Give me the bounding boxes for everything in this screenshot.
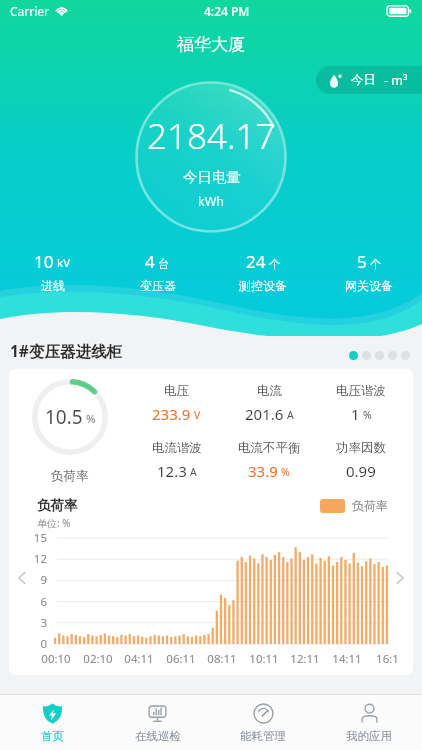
staticText: 测控设备	[239, 278, 287, 293]
staticText: 今日	[351, 72, 376, 88]
staticText: 负荷率	[352, 498, 388, 513]
staticText: 单位: %	[37, 516, 71, 530]
staticText: Carrier	[10, 3, 50, 19]
staticText: 4:24 PM	[204, 3, 250, 19]
staticText: 10.5	[45, 404, 83, 430]
button[interactable]: Page 5	[401, 351, 410, 360]
staticText: 电压谐波	[336, 383, 386, 399]
staticText: A	[190, 465, 197, 479]
staticText: 10	[34, 250, 54, 273]
staticText: 能耗管理	[240, 729, 286, 743]
staticText: 电流谐波	[152, 440, 202, 456]
button[interactable]: 能耗管理	[210, 695, 316, 750]
staticText: 5	[357, 250, 367, 273]
staticText: 进线	[41, 278, 65, 293]
staticText: V	[194, 408, 201, 422]
button[interactable]: 首页	[0, 695, 105, 750]
staticText: 33.9	[248, 461, 278, 481]
staticText: %	[86, 411, 96, 427]
staticText: 2184.17	[147, 112, 276, 160]
staticText: A	[287, 408, 294, 422]
staticText: kV	[57, 255, 71, 271]
staticText: 今日电量	[183, 168, 241, 186]
button[interactable]: 10.5	[9, 369, 413, 675]
button[interactable]: 10	[0, 250, 105, 293]
staticText: 16:1	[376, 651, 399, 667]
staticText: 网关设备	[345, 278, 393, 293]
staticText: 201.6	[245, 404, 284, 424]
staticText: 负荷率	[51, 468, 89, 484]
button[interactable]: 在线巡检	[105, 695, 210, 750]
button[interactable]: 24	[210, 250, 316, 293]
button[interactable]: Page 1	[349, 351, 358, 360]
staticText: 首页	[41, 729, 64, 743]
staticText: 负荷率	[37, 497, 78, 514]
button[interactable]: 我的应用	[316, 695, 422, 750]
staticText: 个	[269, 257, 281, 271]
staticText: 我的应用	[346, 729, 392, 743]
button[interactable]: 负荷率	[320, 498, 388, 513]
button[interactable]: 今日	[316, 66, 422, 94]
button[interactable]: Page 2	[362, 351, 371, 360]
staticText: 0	[40, 636, 47, 652]
staticText: 功率因数	[336, 440, 386, 456]
staticText: 个	[370, 257, 382, 271]
staticText: 12	[33, 551, 47, 567]
button[interactable]: Previous	[11, 567, 33, 589]
staticText: 变压器	[140, 278, 176, 293]
staticText: 06:11	[166, 651, 196, 667]
staticText: 6	[40, 594, 47, 610]
staticText: 12:11	[290, 651, 320, 667]
staticText: 04:11	[124, 651, 154, 667]
staticText: 3	[40, 615, 47, 631]
staticText: - m³	[384, 72, 408, 89]
staticText: 10:11	[249, 651, 279, 667]
staticText: 14:11	[332, 651, 362, 667]
staticText: 0.99	[346, 461, 376, 481]
staticText: 00:10	[41, 651, 71, 667]
staticText: %	[281, 465, 290, 479]
staticText: 电流不平衡	[238, 440, 301, 456]
staticText: 9	[40, 572, 47, 588]
button[interactable]: Page 3	[375, 351, 384, 360]
staticText: 电流	[257, 383, 282, 399]
staticText: 15	[33, 530, 47, 546]
staticText: %	[363, 408, 372, 422]
button[interactable]: 5	[316, 250, 422, 293]
staticText: 在线巡检	[135, 729, 181, 743]
staticText: 1	[351, 404, 360, 424]
staticText: kWh	[198, 193, 225, 210]
button[interactable]: Next	[389, 567, 411, 589]
button[interactable]: 4	[105, 250, 210, 293]
staticText: 24	[246, 250, 266, 273]
staticText: 福华大厦	[177, 34, 245, 55]
staticText: 1#变压器进线柜	[10, 340, 122, 361]
staticText: 电压	[164, 383, 189, 399]
staticText: 4	[145, 250, 155, 273]
staticText: 12.3	[157, 461, 187, 481]
staticText: 08:11	[207, 651, 237, 667]
staticText: 台	[158, 257, 170, 271]
button[interactable]: Page 4	[388, 351, 397, 360]
staticText: 02:10	[83, 651, 113, 667]
staticText: 233.9	[152, 404, 191, 424]
